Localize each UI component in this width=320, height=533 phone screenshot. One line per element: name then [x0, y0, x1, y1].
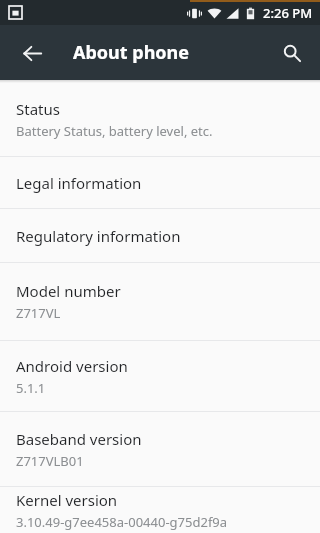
staticText: Status: [16, 99, 60, 119]
staticText: About phone: [73, 40, 190, 65]
button[interactable]: Android version: [0, 341, 320, 411]
button[interactable]: Regulatory information: [0, 209, 320, 262]
staticText: Baseband version: [16, 429, 142, 449]
staticText: Z717VLB01: [16, 452, 84, 470]
staticText: Kernel version: [16, 490, 118, 510]
button[interactable]: Back: [16, 37, 48, 69]
button[interactable]: Search: [275, 36, 309, 70]
staticText: Model number: [16, 281, 121, 301]
button[interactable]: Baseband version: [0, 412, 320, 486]
button[interactable]: Kernel version: [0, 487, 320, 533]
button[interactable]: Legal information: [0, 157, 320, 208]
staticText: 2:26 PM: [263, 4, 313, 22]
staticText: Legal information: [16, 173, 142, 193]
staticText: 3.10.49-g7ee458a-00440-g75d2f9a: [16, 513, 228, 531]
staticText: Regulatory information: [16, 226, 181, 246]
staticText: Battery Status, battery level, etc.: [16, 122, 213, 140]
staticText: Z717VL: [16, 304, 61, 322]
button[interactable]: Model number: [0, 263, 320, 340]
staticText: Android version: [16, 356, 128, 376]
button[interactable]: Status: [0, 83, 320, 156]
staticText: 5.1.1: [16, 379, 46, 397]
